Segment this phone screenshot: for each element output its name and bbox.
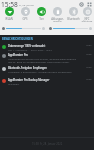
staticText: Fr, 28. Januar [19,3,35,6]
staticText: 15:58 Fr, 28. Januar 2022 [32,142,63,146]
staticText: Gib 1. Mobilfunk - 28.01.2022 - 15:57 [8,48,52,51]
button[interactable]: Bluetooth [65,7,81,21]
staticText: AppMonster Pro [8,53,28,57]
button[interactable] [2,26,45,31]
button[interactable]: Bluetooth-Freigabe: Empfangen [0,65,94,77]
staticText: Installiert [8,82,20,85]
button[interactable]: Akkusparmodus [49,7,65,22]
staticText: 15:45 [86,66,92,69]
staticText: Luftspiele: 0 Empfangen - Dateien wurden… [8,70,72,73]
staticText: Bluetooth [67,17,80,21]
button[interactable]: NFC [81,7,93,22]
button[interactable]: Settings [79,2,84,7]
staticText: BENACHRICHTIGUNGEN [2,37,33,41]
staticText: NFC aktivieren [81,17,93,22]
staticText: 15:57 [86,44,92,47]
staticText: hierzu. Bitte im Geraetemanager freischa… [8,60,70,63]
button[interactable] [49,26,92,31]
staticText: 15:05 [86,78,92,81]
button[interactable]: Datenmenge 100% verbraucht [0,43,94,52]
staticText: AppMonster Pro Backup Manager [8,78,50,82]
button[interactable]: Edit tiles [87,2,92,7]
button[interactable]: Ton [33,7,49,21]
staticText: Verknuepfung wurde nicht erstellt, da ke… [8,57,76,60]
button[interactable]: WLAN [1,7,17,21]
staticText: Ton [39,17,44,21]
button[interactable]: AppMonster Pro Backup Manager [0,77,94,87]
button[interactable]: AppMonster Pro [0,52,94,65]
staticText: GPS [22,17,28,21]
staticText: 15:46 [86,53,92,56]
staticText: Datenmenge 100% verbraucht [8,44,46,48]
staticText: Akkuspar- modus [51,17,64,22]
button[interactable]: GPS [17,7,33,21]
staticText: Bluetooth-Freigabe: Empfangen [8,66,47,70]
staticText: WLAN [5,17,13,21]
staticText: 15:58 [1,0,18,8]
